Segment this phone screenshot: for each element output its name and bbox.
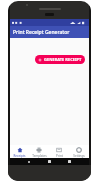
button[interactable]: Settings [69, 145, 89, 158]
staticText: Print Receipt Generator [13, 29, 70, 36]
button[interactable]: Home [48, 160, 51, 163]
staticText: Print [56, 154, 63, 158]
button[interactable]: Receipts [10, 145, 29, 158]
staticText: Settings [73, 154, 85, 158]
staticText: Templates [32, 154, 47, 158]
button[interactable]: Recents [68, 160, 71, 163]
staticText: Receipts [13, 154, 26, 158]
button[interactable]: Templates [29, 145, 49, 158]
button[interactable]: Print [49, 145, 69, 158]
button[interactable]: GENERATE RECEIPT [35, 55, 85, 64]
staticText: GENERATE RECEIPT [44, 57, 82, 62]
